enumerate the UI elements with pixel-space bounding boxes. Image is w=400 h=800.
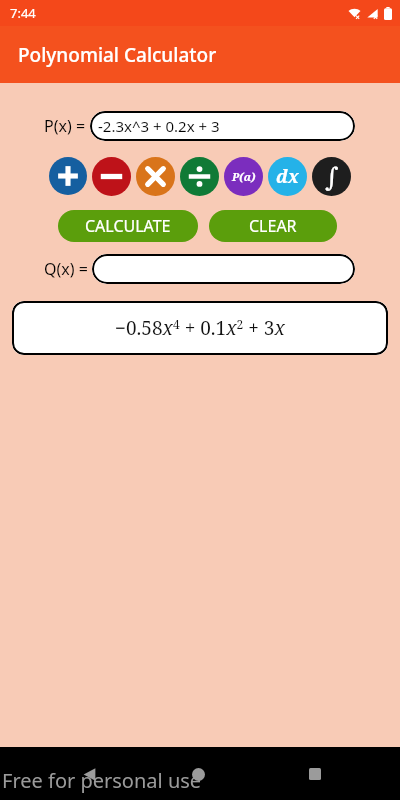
staticText: CALCULATE <box>85 215 171 237</box>
button[interactable] <box>92 254 355 284</box>
staticText: P(x) = <box>44 115 86 137</box>
button[interactable]: CALCULATE <box>58 210 198 242</box>
button[interactable]: Back <box>74 759 104 789</box>
button[interactable]: Integral <box>312 157 351 196</box>
staticText: CLEAR <box>249 215 297 237</box>
button[interactable]: Evaluate P of a <box>224 157 263 196</box>
staticText: 7:44 <box>10 4 36 22</box>
button[interactable]: Divide <box>180 157 219 196</box>
staticText: dx <box>276 164 299 189</box>
button[interactable]: Add <box>49 157 87 195</box>
button[interactable]: CLEAR <box>209 210 337 242</box>
button[interactable]: Recent apps <box>300 759 330 789</box>
button[interactable]: -2.3x^3 + 0.2x + 3 <box>90 111 355 141</box>
staticText: -2.3x^3 + 0.2x + 3 <box>98 116 220 136</box>
button[interactable]: −0.58x4 + 0.1x2 + 3x <box>12 301 388 355</box>
staticText: P(a) <box>232 169 256 184</box>
staticText: Polynomial Calculator <box>18 42 217 68</box>
button[interactable]: Derivative <box>268 157 307 196</box>
staticText: Q(x) = <box>44 258 88 280</box>
button[interactable]: Home <box>183 759 213 789</box>
staticText: ∫ <box>325 162 339 192</box>
staticText: Free for personal use <box>2 767 202 794</box>
button[interactable]: Multiply <box>136 157 175 196</box>
button[interactable]: Subtract <box>92 157 131 196</box>
staticText: −0.58x4 + 0.1x2 + 3x <box>115 315 285 341</box>
